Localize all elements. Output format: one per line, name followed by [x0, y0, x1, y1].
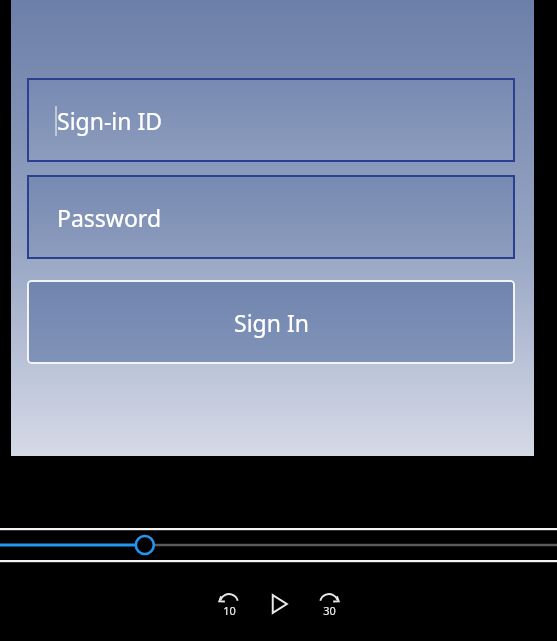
button[interactable]: Sign In	[27, 280, 515, 364]
button[interactable]: Sign-in ID	[27, 78, 515, 162]
button[interactable]: Seek bar	[0, 525, 557, 565]
staticText: 10	[223, 603, 236, 618]
button[interactable]: Password	[27, 175, 515, 259]
staticText: Sign-in ID	[57, 105, 163, 136]
staticText: 30	[323, 603, 336, 618]
button[interactable]: Rewind 10 seconds	[212, 587, 246, 621]
button[interactable]: Play	[262, 587, 296, 621]
button[interactable]: Forward 30 seconds	[312, 587, 346, 621]
staticText: Sign In	[234, 307, 309, 338]
staticText: Password	[57, 202, 162, 233]
